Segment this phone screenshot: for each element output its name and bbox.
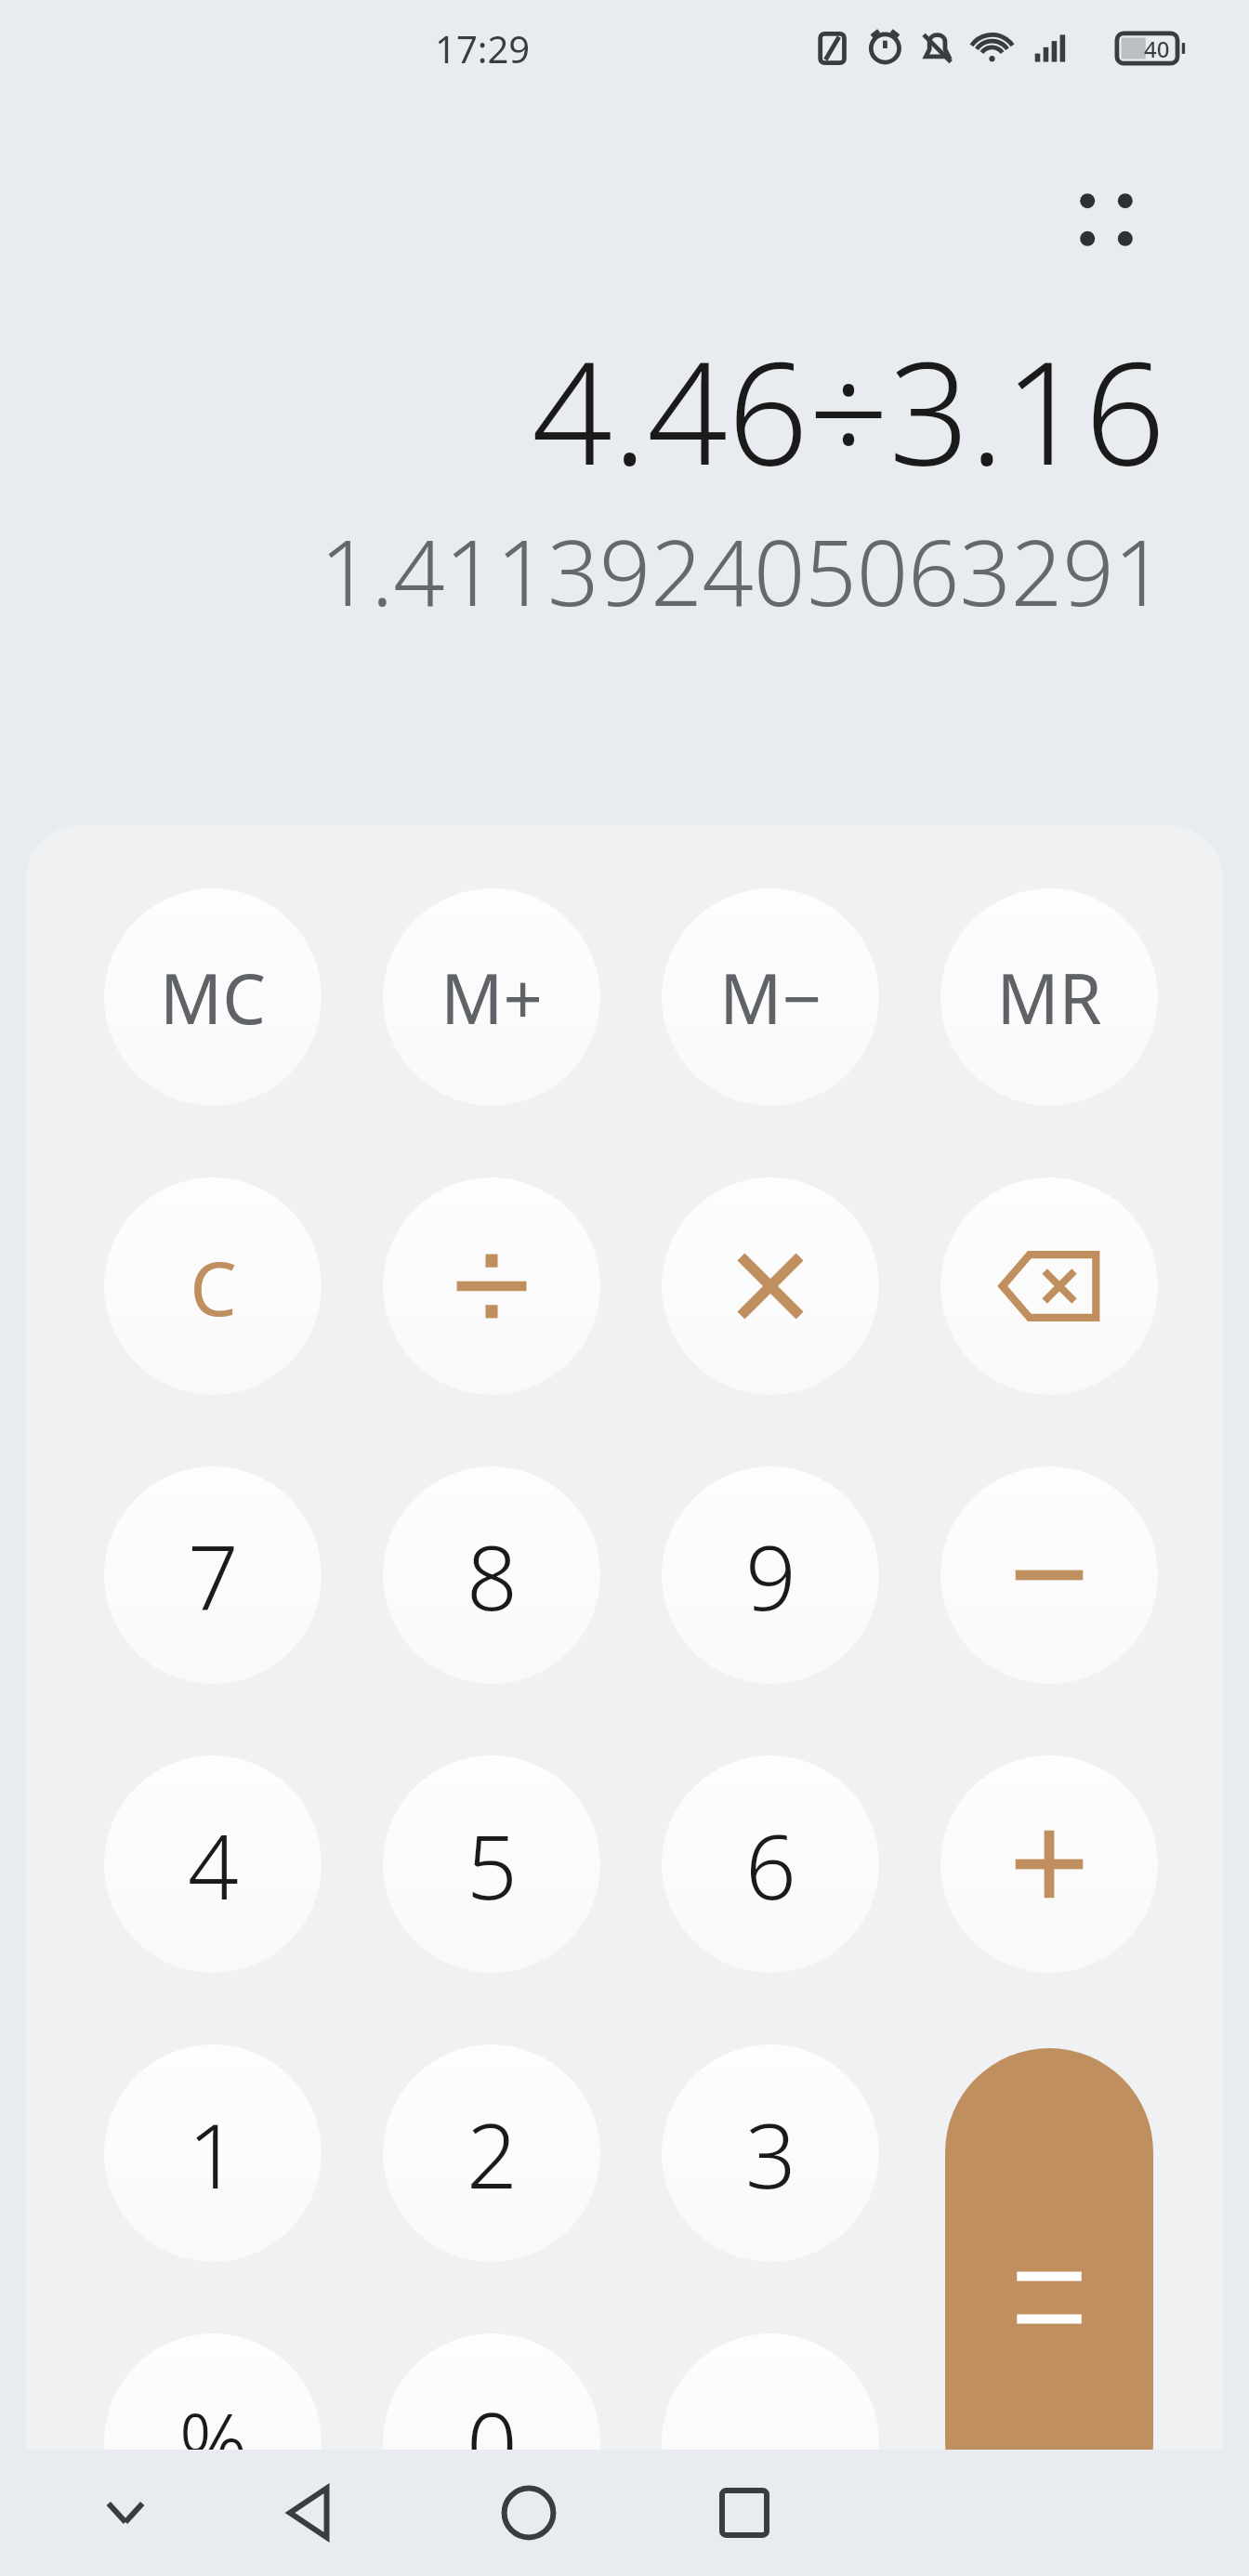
staticText: 0 [467,2382,518,2504]
button[interactable]: Minus [940,1466,1158,1684]
button[interactable]: 3 [662,2044,879,2262]
staticText: 4 [188,1804,239,1925]
button[interactable]: 4 [104,1755,322,1973]
staticText: MC [160,951,266,1045]
button[interactable]: . [662,2333,879,2551]
button[interactable]: MC [104,888,322,1106]
staticText: 9 [745,1515,796,1636]
button[interactable]: 5 [383,1755,600,1973]
button[interactable]: C [104,1177,322,1395]
button[interactable]: 7 [104,1466,322,1684]
button[interactable]: 9 [662,1466,879,1684]
button[interactable]: Divide [383,1177,600,1395]
staticText: 1 [188,2093,239,2215]
staticText: 17:29 [435,23,531,73]
staticText: C [190,1236,237,1337]
staticText: 2 [467,2093,518,2215]
button[interactable]: MR [940,888,1158,1106]
button[interactable]: 1 [104,2044,322,2262]
button[interactable]: Recents [675,2452,814,2573]
button[interactable]: Equals [945,2048,1153,2547]
staticText: 8 [467,1515,518,1636]
button[interactable]: % [104,2333,322,2551]
staticText: 1.411392405063291 [320,509,1165,632]
button[interactable]: Backspace [940,1177,1158,1395]
button[interactable]: Multiply [662,1177,879,1395]
button[interactable]: 8 [383,1466,600,1684]
staticText: MR [996,951,1102,1045]
button[interactable]: Back [243,2452,383,2573]
staticText: M− [719,951,822,1045]
staticText: M+ [440,951,543,1045]
button[interactable]: M− [662,888,879,1106]
staticText: 3 [745,2093,796,2215]
button[interactable]: Hide [56,2452,195,2573]
button[interactable]: M+ [383,888,600,1106]
staticText: % [178,2385,248,2501]
staticText: . [759,2382,782,2504]
staticText: 7 [188,1515,239,1636]
staticText: 40 [1144,33,1170,64]
button[interactable]: 6 [662,1755,879,1973]
button[interactable]: 2 [383,2044,600,2262]
button[interactable]: History [1039,152,1174,287]
button[interactable]: Home [459,2452,598,2573]
staticText: 4.46÷3.16 [532,314,1165,506]
button[interactable]: Plus [940,1755,1158,1973]
staticText: 5 [467,1804,518,1925]
button[interactable]: 0 [383,2333,600,2551]
staticText: 6 [745,1804,796,1925]
